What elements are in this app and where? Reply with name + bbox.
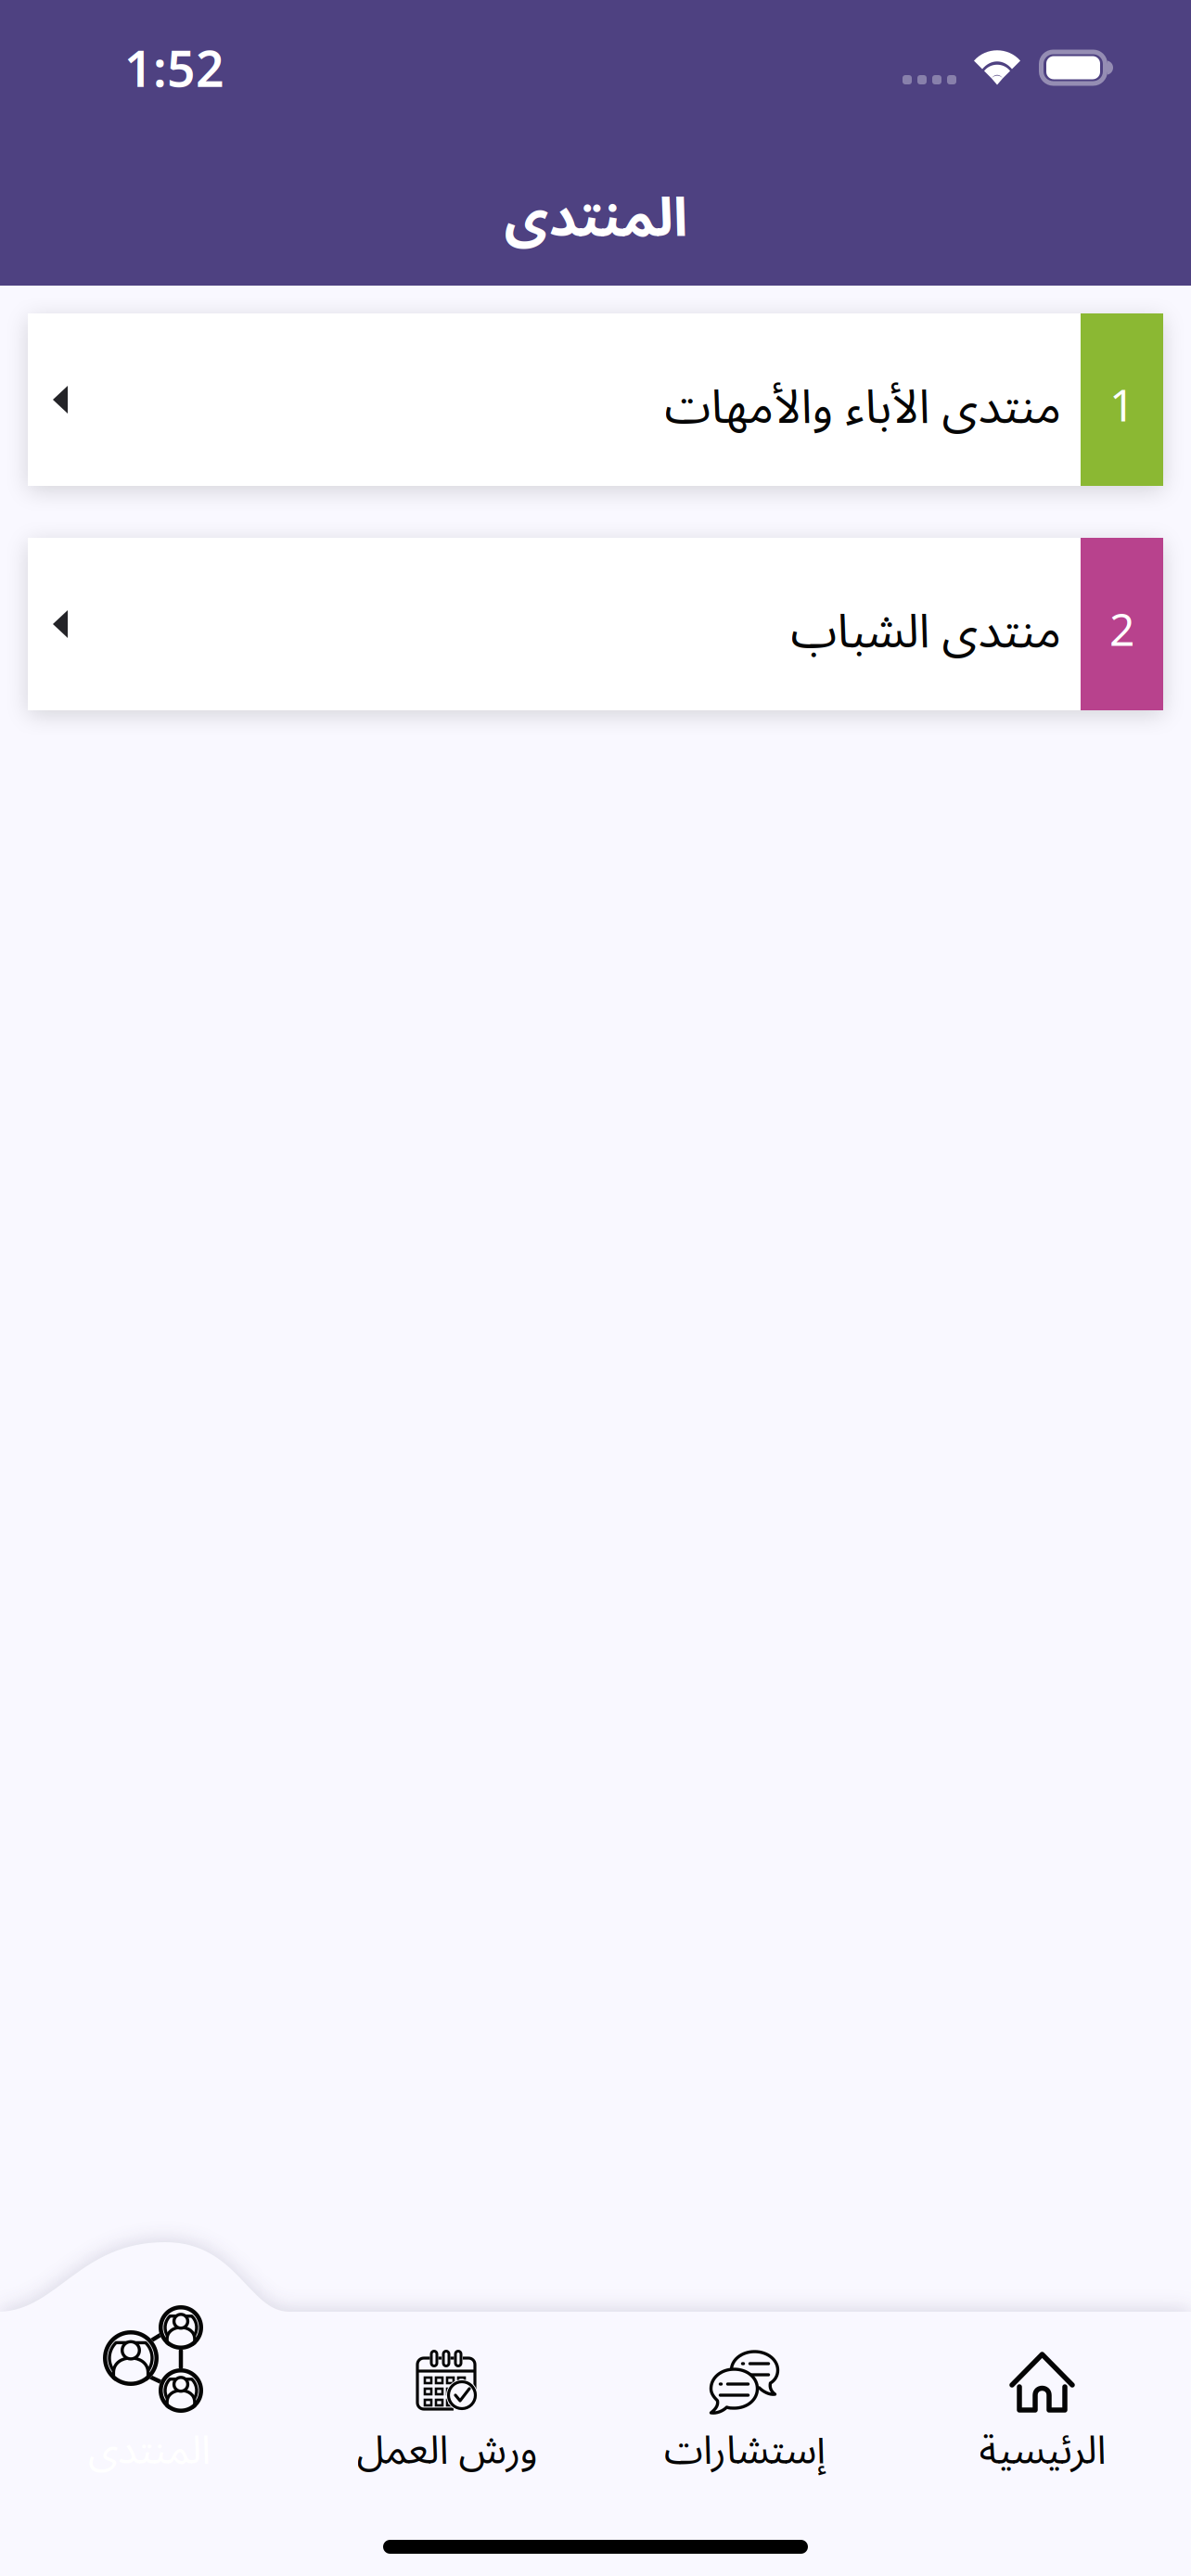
staticText: منتدى الأباء والأمهات [664,358,1061,458]
staticText: 2 [1109,599,1134,658]
staticText: المنتدى [504,161,687,276]
staticText: إستشارات [664,2409,825,2493]
staticText: الرئيسية [979,2409,1106,2493]
staticText: 1:52 [124,35,224,101]
button[interactable]: منتدى الشباب [28,538,1163,710]
button[interactable]: الرئيسية [893,2232,1191,2576]
button[interactable]: إستشارات [595,2232,893,2576]
staticText: ورش العمل [356,2409,537,2493]
button[interactable]: منتدى الأباء والأمهات [28,313,1163,486]
staticText: المنتدى [88,2409,210,2493]
button[interactable]: المنتدى [0,2232,298,2576]
staticText: 1 [1109,375,1134,434]
staticText: منتدى الشباب [790,583,1061,682]
button[interactable]: ورش العمل [298,2232,595,2576]
